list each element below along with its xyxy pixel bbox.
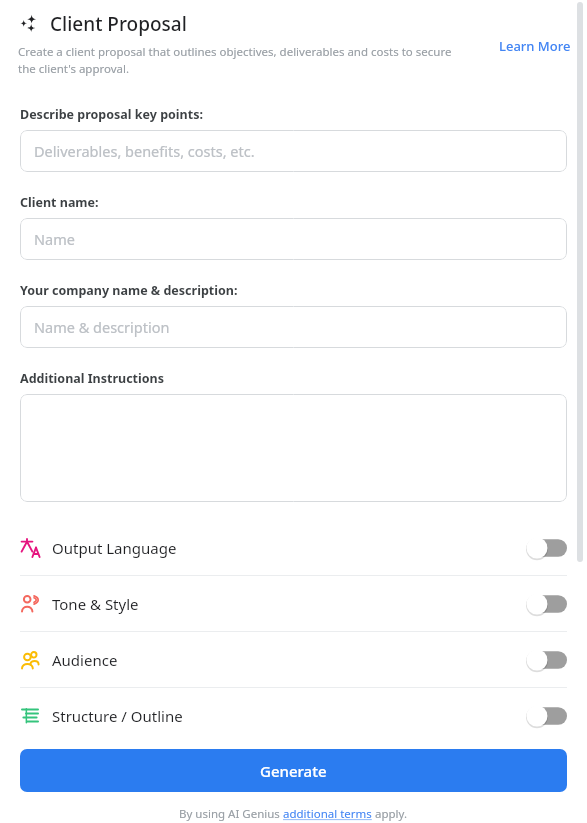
button[interactable]: Structure / Outline xyxy=(0,688,587,743)
staticText: Name & description xyxy=(34,317,170,337)
staticText: Audience xyxy=(52,650,118,670)
button[interactable]: Deliverables, benefits, costs, etc. xyxy=(20,130,567,172)
staticText: Deliverables, benefits, costs, etc. xyxy=(34,141,255,161)
other: Toggle xyxy=(526,593,567,615)
staticText: Name xyxy=(34,229,75,249)
other: Toggle xyxy=(526,537,567,559)
button[interactable]: additional terms xyxy=(283,806,372,822)
other: Toggle xyxy=(526,705,567,727)
staticText: Output Language xyxy=(52,538,177,558)
button[interactable] xyxy=(20,394,567,502)
staticText: Structure / Outline xyxy=(52,706,183,726)
other: Toggle xyxy=(526,649,567,671)
staticText: additional terms xyxy=(283,806,372,822)
button[interactable]: Name xyxy=(20,218,567,260)
staticText: Create a client proposal that outlines o… xyxy=(18,44,470,76)
staticText: Learn More xyxy=(499,37,571,55)
button[interactable]: Tone & Style xyxy=(0,576,587,631)
staticText: Client name: xyxy=(20,194,99,211)
staticText: Tone & Style xyxy=(52,594,139,614)
staticText: Generate xyxy=(260,761,327,781)
staticText: Describe proposal key points: xyxy=(20,106,203,123)
button[interactable]: Output Language xyxy=(0,520,587,575)
button[interactable]: Learn More xyxy=(497,35,573,57)
button[interactable]: Name & description xyxy=(20,306,567,348)
staticText: apply. xyxy=(372,806,408,822)
staticText: Your company name & description: xyxy=(20,282,238,299)
button[interactable]: Generate xyxy=(20,749,567,792)
staticText: Client Proposal xyxy=(50,11,187,37)
staticText: Additional Instructions xyxy=(20,370,164,387)
button[interactable]: Audience xyxy=(0,632,587,687)
staticText: By using AI Genius xyxy=(179,806,283,822)
